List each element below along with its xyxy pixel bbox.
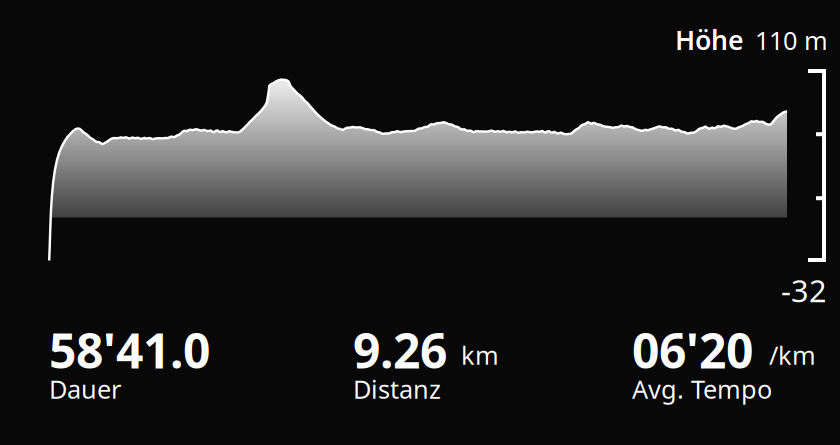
button[interactable]: 9.26 bbox=[304, 304, 583, 400]
button[interactable]: Höhe bbox=[0, 22, 828, 57]
staticText: 06'20 bbox=[632, 318, 753, 382]
staticText: 110 m bbox=[755, 23, 828, 57]
button[interactable]: 06'20 bbox=[583, 304, 840, 400]
staticText: Distanz bbox=[353, 372, 441, 406]
button[interactable]: 58'41.0 bbox=[0, 304, 304, 400]
staticText: 58'41.0 bbox=[49, 318, 210, 382]
staticText: km bbox=[461, 338, 499, 372]
staticText: Avg. Tempo bbox=[632, 372, 772, 406]
staticText: Höhe bbox=[675, 22, 744, 57]
staticText: -32 bbox=[781, 270, 827, 311]
staticText: /km bbox=[769, 338, 816, 372]
staticText: Dauer bbox=[49, 372, 121, 406]
staticText: 9.26 bbox=[353, 318, 447, 382]
